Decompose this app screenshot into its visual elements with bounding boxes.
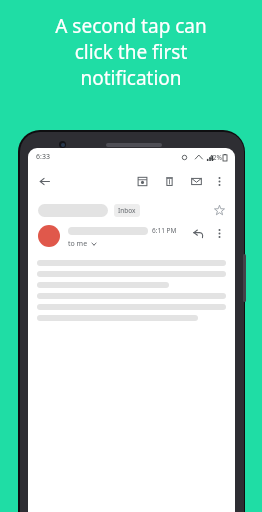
button[interactable]: Delete [161, 173, 177, 189]
staticText: A second tap can [8, 13, 254, 39]
staticText: notification [8, 65, 254, 91]
button[interactable]: Star [211, 202, 227, 218]
button[interactable]: to me [68, 239, 97, 249]
button[interactable]: More [211, 225, 227, 241]
button[interactable]: More options [211, 173, 227, 189]
staticText: 42% [209, 153, 222, 162]
staticText: 6:11 PM [152, 226, 177, 235]
staticText: Inbox [118, 206, 136, 215]
staticText: to me [68, 239, 88, 249]
button[interactable]: Reply [190, 225, 206, 241]
staticText: 6:33 [36, 152, 50, 162]
button[interactable]: Mark unread [188, 173, 204, 189]
button[interactable]: Back [36, 173, 52, 189]
button[interactable] [38, 225, 60, 247]
staticText: click the first [8, 39, 254, 65]
button[interactable]: Archive [134, 173, 150, 189]
button[interactable]: Inbox [114, 204, 140, 217]
